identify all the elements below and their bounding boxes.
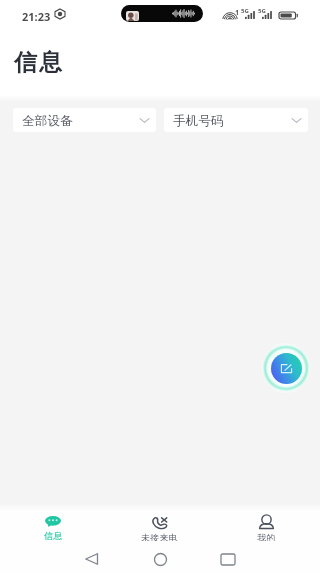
button[interactable]: 未接来电 — [106, 510, 213, 541]
staticText: 信息 — [44, 530, 63, 541]
button[interactable]: Back — [85, 553, 98, 565]
button[interactable]: 全部设备 — [13, 108, 156, 132]
staticText: 手机号码 — [173, 113, 224, 129]
staticText: 全部设备 — [22, 113, 73, 129]
staticText: 21:23 — [22, 9, 51, 24]
button[interactable]: 信息 — [0, 510, 106, 541]
staticText: 未接来电 — [141, 532, 178, 541]
button[interactable]: Recents — [221, 554, 235, 565]
staticText: 信息 — [13, 48, 63, 77]
staticText: 5G — [258, 7, 266, 15]
button[interactable]: 手机号码 — [164, 108, 308, 132]
staticText: 我的 — [257, 532, 276, 541]
button[interactable]: 我的 — [213, 510, 320, 541]
staticText: 5G — [241, 7, 249, 15]
button[interactable]: New message — [271, 353, 302, 384]
button[interactable]: Home — [154, 553, 167, 566]
staticText: 1 — [235, 8, 240, 18]
